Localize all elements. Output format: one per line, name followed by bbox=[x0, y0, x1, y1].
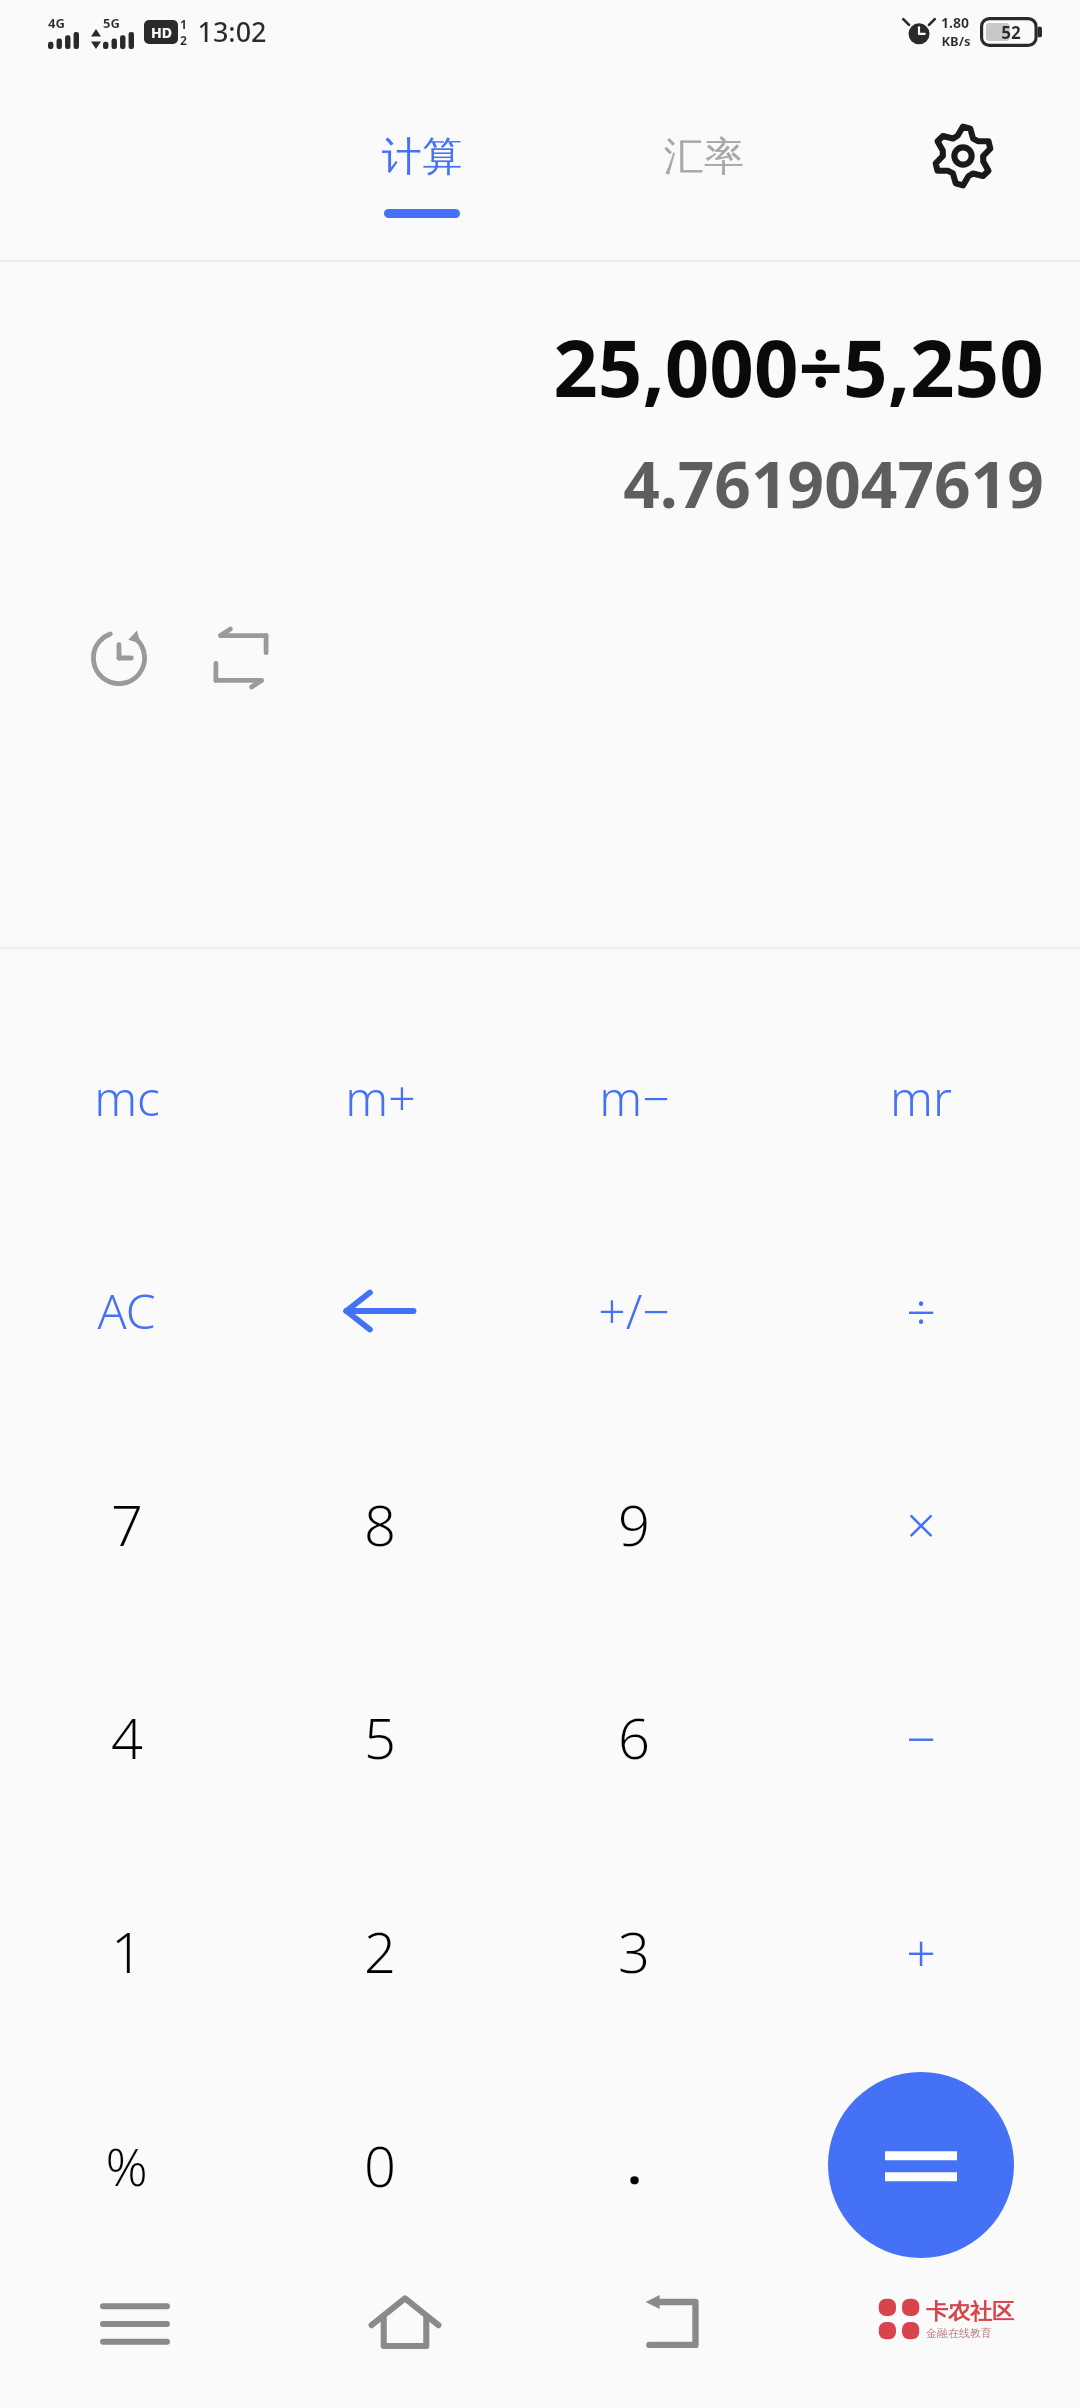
button[interactable]: 计算 bbox=[281, 62, 563, 262]
button[interactable]: Backspace bbox=[253, 1204, 507, 1417]
button[interactable]: 0 bbox=[253, 2058, 507, 2272]
staticText: 13:02 bbox=[197, 13, 267, 50]
staticText: 汇率 bbox=[664, 131, 744, 181]
button[interactable]: 1 bbox=[0, 1844, 253, 2058]
staticText: 6 bbox=[618, 1699, 650, 1775]
staticText: 3 bbox=[618, 1913, 650, 1989]
staticText: 金融在线教育 bbox=[926, 2326, 992, 2340]
staticText: ÷ bbox=[906, 1275, 936, 1346]
staticText: 4G bbox=[48, 14, 65, 32]
button[interactable]: Back bbox=[540, 2290, 810, 2408]
staticText: × bbox=[906, 1488, 936, 1559]
staticText: HD bbox=[151, 23, 172, 42]
button[interactable]: mr bbox=[761, 991, 1080, 1204]
button[interactable]: . bbox=[507, 2058, 761, 2272]
button[interactable]: m− bbox=[507, 991, 761, 1204]
staticText: 5 bbox=[364, 1699, 396, 1775]
button[interactable]: Equals bbox=[761, 2058, 1080, 2272]
button[interactable]: mc bbox=[0, 991, 253, 1204]
staticText: + bbox=[906, 1916, 936, 1987]
button[interactable]: 5 bbox=[253, 1630, 507, 1844]
staticText: 9 bbox=[618, 1486, 650, 1562]
staticText: 5G bbox=[103, 14, 120, 32]
button[interactable]: 2 bbox=[253, 1844, 507, 2058]
button[interactable]: % bbox=[0, 2058, 253, 2272]
button[interactable]: 3 bbox=[507, 1844, 761, 2058]
staticText: 4.7619047619 bbox=[623, 440, 1044, 527]
staticText: 2 bbox=[180, 32, 187, 48]
staticText: 卡农社区 bbox=[926, 2298, 1014, 2326]
staticText: mc bbox=[94, 1065, 160, 1130]
button[interactable]: Mode bbox=[200, 617, 282, 699]
button[interactable]: × bbox=[761, 1417, 1080, 1630]
button[interactable]: +/− bbox=[507, 1204, 761, 1417]
staticText: mr bbox=[890, 1065, 952, 1130]
staticText: 25,000÷5,250 bbox=[553, 314, 1044, 420]
button[interactable]: AC bbox=[0, 1204, 253, 1417]
staticText: 计算 bbox=[382, 131, 462, 181]
button[interactable]: 9 bbox=[507, 1417, 761, 1630]
button[interactable]: 7 bbox=[0, 1417, 253, 1630]
staticText: 7 bbox=[111, 1486, 143, 1562]
button[interactable]: + bbox=[761, 1844, 1080, 2058]
staticText: AC bbox=[97, 1278, 156, 1343]
button[interactable]: − bbox=[761, 1630, 1080, 1844]
button[interactable]: ÷ bbox=[761, 1204, 1080, 1417]
staticText: KB/s bbox=[941, 32, 971, 50]
button[interactable]: 6 bbox=[507, 1630, 761, 1844]
staticText: 1 bbox=[180, 16, 187, 32]
button[interactable]: m+ bbox=[253, 991, 507, 1204]
staticText: m− bbox=[599, 1065, 670, 1130]
staticText: 4 bbox=[111, 1699, 143, 1775]
staticText: 1 bbox=[111, 1913, 143, 1989]
staticText: . bbox=[627, 2131, 642, 2199]
staticText: m+ bbox=[345, 1065, 416, 1130]
button[interactable]: Equals bbox=[828, 2072, 1014, 2258]
button[interactable]: Recents bbox=[0, 2290, 270, 2408]
staticText: % bbox=[105, 2130, 148, 2201]
staticText: 1.80 bbox=[941, 13, 969, 32]
staticText: 2 bbox=[364, 1913, 396, 1989]
button[interactable]: 4 bbox=[0, 1630, 253, 1844]
button[interactable]: Settings bbox=[845, 62, 1080, 262]
staticText: 52 bbox=[1001, 21, 1021, 44]
staticText: +/− bbox=[598, 1278, 670, 1343]
staticText: 0 bbox=[364, 2127, 396, 2203]
button[interactable]: History bbox=[78, 617, 160, 699]
button[interactable]: Home bbox=[270, 2290, 540, 2408]
staticText: 8 bbox=[364, 1486, 396, 1562]
staticText: − bbox=[906, 1702, 936, 1773]
button[interactable]: 汇率 bbox=[563, 62, 845, 262]
button[interactable]: 8 bbox=[253, 1417, 507, 1630]
